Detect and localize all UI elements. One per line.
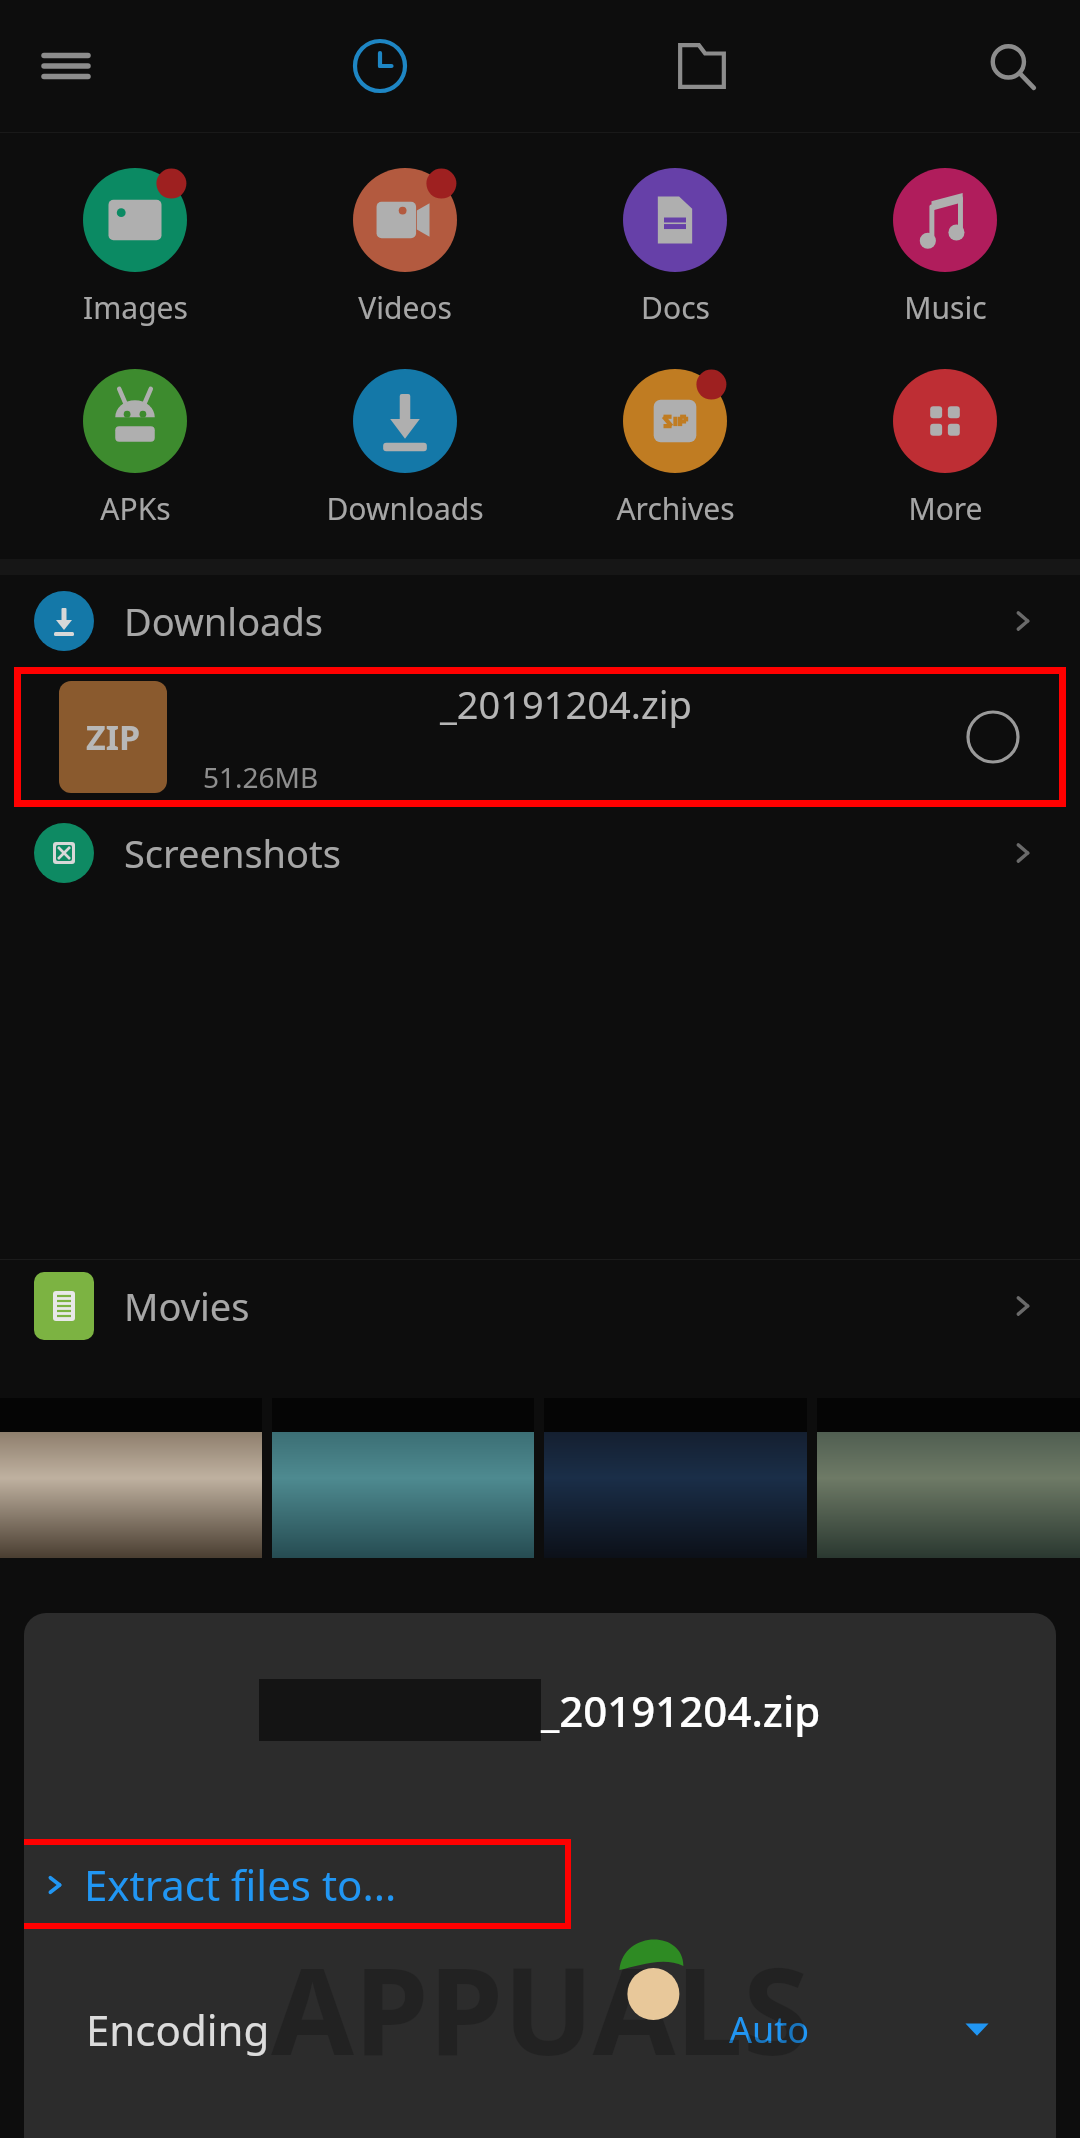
staticText: APPUALS: [271, 1927, 809, 2090]
button[interactable]: Extract files to...: [24, 1845, 565, 1923]
button[interactable]: Video 3: [544, 1398, 807, 1558]
staticText: Archives: [616, 488, 735, 529]
button[interactable]: More: [810, 362, 1080, 533]
button[interactable]: Video 2: [272, 1398, 534, 1558]
button[interactable]: Recent: [334, 20, 426, 112]
staticText: ZIP: [86, 714, 141, 760]
staticText: 51.26MB: [203, 758, 319, 796]
button[interactable]: Images: [0, 161, 270, 332]
staticText: Images: [83, 287, 188, 328]
button[interactable]: Screenshots: [0, 807, 1080, 899]
staticText: Auto: [729, 2005, 810, 2054]
button[interactable]: Search: [966, 20, 1058, 112]
button[interactable]: Videos: [270, 161, 540, 332]
button[interactable]: Music: [810, 161, 1080, 332]
button[interactable]: Downloads: [270, 362, 540, 533]
button[interactable]: Video 1: [0, 1398, 262, 1558]
button[interactable]: Archives: [540, 362, 810, 533]
button[interactable]: ZIP: [21, 674, 1059, 800]
staticText: More: [908, 488, 983, 529]
staticText: Encoding: [86, 2001, 270, 2058]
staticText: _20191204.zip: [440, 678, 692, 730]
staticText: Screenshots: [124, 827, 341, 879]
staticText: Extract files to...: [84, 1856, 397, 1913]
staticText: Movies: [124, 1280, 250, 1332]
staticText: Docs: [641, 287, 710, 328]
staticText: Downloads: [326, 488, 484, 529]
staticText: _20191204.zip: [541, 1682, 821, 1739]
button[interactable]: Downloads: [0, 575, 1080, 667]
button[interactable]: Folders: [656, 20, 748, 112]
button[interactable]: APKs: [0, 362, 270, 533]
staticText: APKs: [100, 488, 171, 529]
button[interactable]: Menu: [22, 22, 110, 110]
button[interactable]: Movies: [0, 1260, 1080, 1352]
button[interactable]: Encoding: [24, 1981, 1056, 2077]
staticText: Music: [904, 287, 987, 328]
button[interactable]: Video 4: [817, 1398, 1080, 1558]
staticText: Downloads: [124, 595, 324, 647]
button[interactable]: Docs: [540, 161, 810, 332]
staticText: Videos: [358, 287, 452, 328]
